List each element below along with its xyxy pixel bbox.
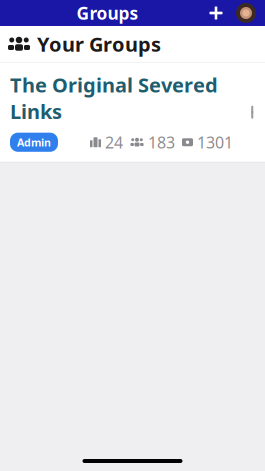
button[interactable]: Create group — [201, 0, 231, 26]
button[interactable]: Open group — [239, 89, 265, 135]
staticText: Admin — [17, 135, 51, 149]
button[interactable]: The Original Severed Links — [0, 62, 265, 162]
staticText: 24 — [105, 132, 123, 153]
staticText: Groups — [76, 1, 138, 24]
staticText: 1301 — [197, 132, 233, 153]
button[interactable]: Profile — [231, 0, 261, 26]
staticText: Your Groups — [37, 31, 161, 57]
staticText: The Original Severed Links — [10, 71, 218, 125]
staticText: 183 — [148, 132, 175, 153]
